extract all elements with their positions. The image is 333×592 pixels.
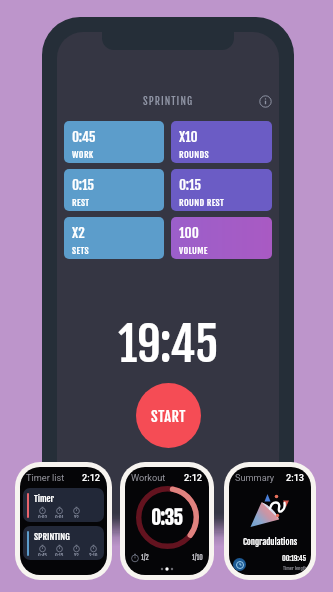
staticText: Timer length — [283, 565, 307, 571]
staticText: SPRINTING — [34, 531, 70, 542]
staticText: Summary — [235, 472, 275, 483]
button[interactable]: X10 — [171, 121, 272, 163]
staticText: VOLUME — [179, 245, 208, 256]
staticText: 0:45 — [72, 128, 96, 145]
staticText: REST — [72, 197, 90, 208]
button[interactable]: Timer — [233, 558, 246, 571]
staticText: ROUND REST — [179, 197, 225, 208]
staticText: 0:01 — [55, 515, 64, 518]
staticText: Congradulations — [229, 536, 311, 547]
staticText: 1/2 — [141, 553, 149, 562]
staticText: START — [151, 407, 186, 425]
staticText: X2 — [72, 224, 85, 241]
staticText: 2:12 — [184, 472, 203, 483]
staticText: 00:19:45 — [282, 554, 307, 563]
staticText: 0:15 — [179, 176, 202, 193]
staticText: Workout — [131, 472, 166, 483]
staticText: 19:45 — [118, 314, 219, 366]
staticText: 1/10 — [192, 553, 203, 562]
button[interactable]: Timer — [23, 488, 104, 522]
staticText: X2 — [74, 553, 79, 556]
staticText: 0:03 — [38, 515, 47, 518]
button[interactable]: Info — [256, 92, 274, 110]
staticText: 0:15 — [55, 553, 64, 556]
staticText: SPRINTING — [143, 95, 194, 108]
button[interactable]: 0:45 — [64, 121, 164, 163]
staticText: Timer — [34, 493, 55, 504]
staticText: SETS — [72, 245, 90, 256]
button[interactable]: 0:15 — [171, 169, 272, 211]
button[interactable]: 0:15 — [64, 169, 164, 211]
staticText: 0:45 — [38, 553, 47, 556]
staticText: X10 — [179, 128, 198, 145]
button[interactable]: 100 — [171, 217, 272, 259]
staticText: 0:35 — [151, 506, 183, 529]
staticText: 2:13 — [286, 472, 305, 483]
staticText: WORK — [72, 149, 94, 160]
staticText: ROUNDS — [179, 149, 209, 160]
staticText: 2:12 — [82, 472, 101, 483]
button[interactable]: SPRINTING — [23, 526, 104, 560]
staticText: 100 — [179, 224, 199, 241]
button[interactable]: START — [136, 383, 201, 448]
button[interactable]: X2 — [64, 217, 164, 259]
staticText: Timer list — [26, 472, 65, 483]
staticText: 3:10 — [89, 553, 98, 556]
staticText: X2 — [74, 515, 79, 518]
staticText: 0:15 — [72, 176, 95, 193]
